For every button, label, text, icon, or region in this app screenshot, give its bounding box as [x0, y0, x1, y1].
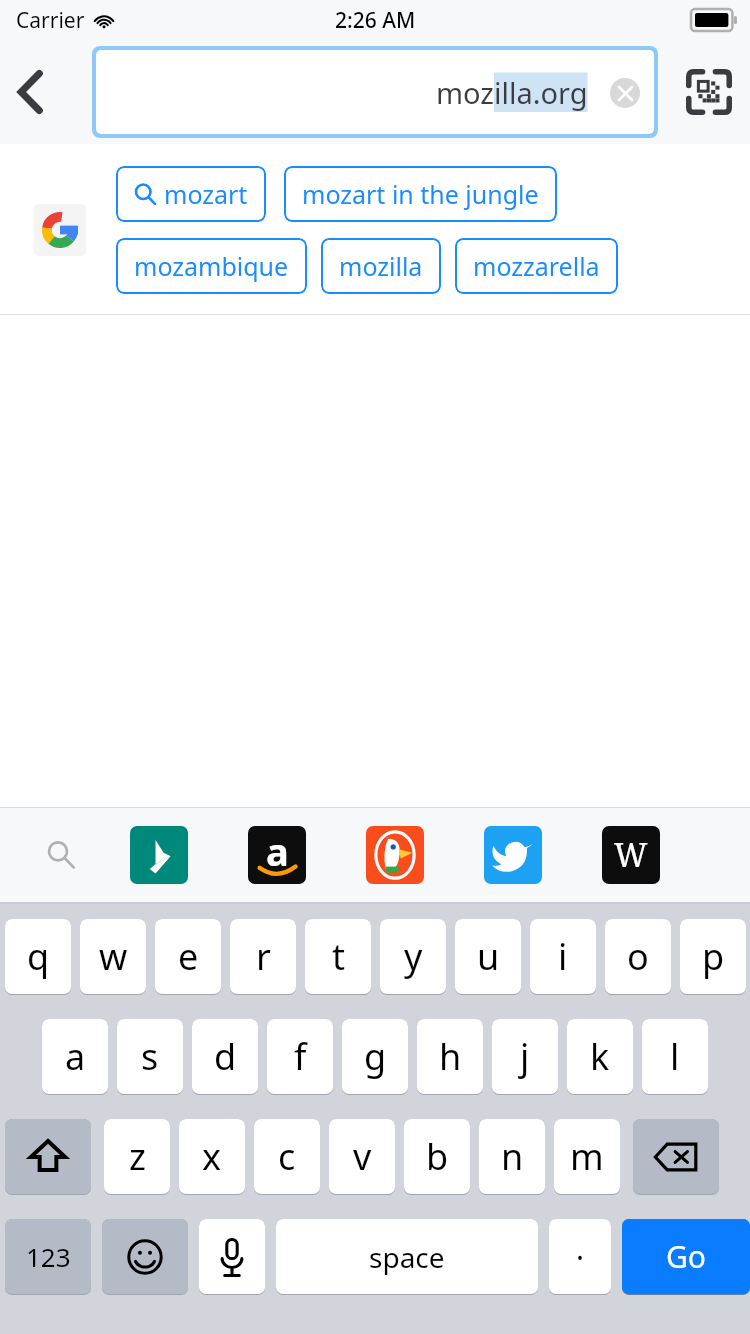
button[interactable]: i: [530, 919, 596, 997]
staticText: e: [178, 932, 199, 981]
staticText: s: [141, 1032, 159, 1081]
button[interactable]: v: [329, 1119, 395, 1197]
button[interactable]: b: [404, 1119, 470, 1197]
button[interactable]: m: [554, 1119, 620, 1197]
staticText: h: [439, 1032, 462, 1081]
staticText: mozilla: [339, 249, 423, 283]
button[interactable]: Go: [622, 1219, 750, 1297]
staticText: d: [214, 1032, 237, 1081]
staticText: m: [570, 1132, 604, 1181]
staticText: x: [202, 1132, 222, 1181]
button[interactable]: n: [479, 1119, 545, 1197]
staticText: mozilla.org: [436, 73, 588, 112]
button[interactable]: u: [455, 919, 521, 997]
staticText: g: [364, 1032, 387, 1081]
button[interactable]: x: [179, 1119, 245, 1197]
button[interactable]: period: [549, 1219, 611, 1297]
staticText: v: [353, 1132, 372, 1181]
staticText: mozart in the jungle: [302, 177, 539, 211]
staticText: q: [27, 932, 50, 981]
staticText: r: [256, 932, 271, 981]
button[interactable]: Clear text: [610, 78, 640, 108]
button[interactable]: space: [276, 1219, 538, 1297]
staticText: a: [65, 1032, 86, 1081]
staticText: i: [558, 932, 568, 981]
staticText: a: [266, 826, 289, 877]
button[interactable]: mozart in the jungle: [284, 166, 557, 222]
button[interactable]: mozilla: [321, 238, 441, 294]
button[interactable]: Numbers: [5, 1219, 91, 1297]
staticText: w: [99, 932, 128, 981]
button[interactable]: h: [417, 1019, 483, 1097]
button[interactable]: j: [492, 1019, 558, 1097]
button[interactable]: mozart: [116, 166, 266, 222]
staticText: space: [369, 1238, 445, 1276]
button[interactable]: y: [380, 919, 446, 997]
staticText: t: [332, 932, 345, 981]
staticText: W: [614, 833, 648, 877]
staticText: z: [129, 1132, 146, 1181]
button[interactable]: e: [155, 919, 221, 997]
button[interactable]: w: [80, 919, 146, 997]
button[interactable]: c: [254, 1119, 320, 1197]
button[interactable]: mozambique: [116, 238, 307, 294]
staticText: n: [501, 1132, 524, 1181]
button[interactable]: k: [567, 1019, 633, 1097]
staticText: mozzarella: [473, 249, 600, 283]
staticText: u: [477, 932, 500, 981]
button[interactable]: f: [267, 1019, 333, 1097]
button[interactable]: r: [230, 919, 296, 997]
button[interactable]: Backspace: [633, 1119, 719, 1197]
staticText: 2:26 AM: [335, 6, 416, 35]
button[interactable]: g: [342, 1019, 408, 1097]
staticText: 123: [26, 1239, 71, 1274]
button[interactable]: s: [117, 1019, 183, 1097]
button[interactable]: Emoji: [102, 1219, 188, 1297]
staticText: Carrier: [16, 6, 85, 35]
button[interactable]: Scan QR code: [668, 47, 750, 137]
button[interactable]: a: [42, 1019, 108, 1097]
staticText: mozart: [164, 177, 248, 211]
staticText: k: [590, 1032, 610, 1081]
button[interactable]: DuckDuckGo: [364, 824, 426, 886]
staticText: Go: [666, 1236, 706, 1277]
button[interactable]: l: [642, 1019, 708, 1097]
staticText: p: [702, 932, 725, 981]
staticText: y: [404, 932, 423, 981]
button[interactable]: d: [192, 1019, 258, 1097]
button[interactable]: Bing: [128, 824, 190, 886]
button[interactable]: Search: [38, 832, 84, 878]
button[interactable]: z: [104, 1119, 170, 1197]
staticText: j: [520, 1032, 530, 1081]
button[interactable]: t: [305, 919, 371, 997]
button[interactable]: p: [680, 919, 746, 997]
staticText: .: [576, 1228, 585, 1269]
staticText: o: [627, 932, 649, 981]
staticText: mozambique: [134, 249, 289, 283]
button[interactable]: o: [605, 919, 671, 997]
button[interactable]: Shift: [5, 1119, 91, 1197]
staticText: f: [294, 1032, 307, 1081]
button[interactable]: Dictation: [199, 1219, 265, 1297]
staticText: b: [426, 1132, 449, 1181]
button[interactable]: q: [5, 919, 71, 997]
button[interactable]: Wikipedia: [600, 824, 662, 886]
staticText: l: [670, 1032, 680, 1081]
button[interactable]: mozilla.org: [96, 50, 654, 134]
button[interactable]: mozzarella: [455, 238, 618, 294]
button[interactable]: Amazon: [246, 824, 308, 886]
button[interactable]: Back: [0, 47, 62, 137]
staticText: c: [278, 1132, 296, 1181]
button[interactable]: Twitter: [482, 824, 544, 886]
